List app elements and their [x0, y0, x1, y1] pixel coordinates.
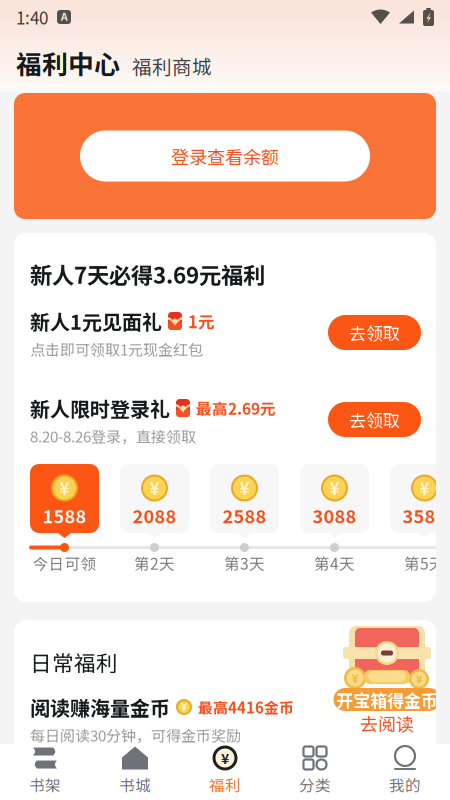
staticText: A	[60, 11, 67, 23]
staticText: 最高2.69元	[196, 397, 276, 419]
staticText: 2088	[132, 502, 176, 529]
staticText: 1元	[188, 309, 215, 333]
staticText: ¥	[416, 671, 422, 687]
staticText: 登录查看余额	[171, 143, 279, 169]
staticText: 福利商城	[132, 52, 212, 80]
staticText: 去领取	[349, 407, 400, 432]
staticText: 第3天	[224, 552, 265, 574]
button[interactable]: 福利中心	[16, 44, 120, 82]
staticText: 3088	[312, 502, 356, 529]
staticText: 福利中心	[16, 44, 120, 82]
staticText: 我的	[389, 773, 421, 796]
staticText: 每日阅读30分钟，可得金币奖励	[30, 724, 241, 746]
staticText: ¥	[329, 476, 339, 500]
button[interactable]: 分类	[270, 744, 360, 800]
staticText: 最高4416金币	[198, 696, 294, 718]
staticText: 第4天	[314, 552, 355, 574]
staticText: 第5天	[404, 552, 445, 574]
staticText: 阅读赚海量金币	[30, 692, 170, 721]
staticText: 新人7天必得3.69元福利	[30, 258, 265, 290]
staticText: 3588	[402, 502, 446, 529]
staticText: 新人1元见面礼	[30, 306, 162, 335]
staticText: ¥	[221, 748, 229, 768]
staticText: ¥	[59, 476, 69, 500]
staticText: 新人限时登录礼	[30, 393, 170, 422]
staticText: 1:40	[16, 5, 48, 29]
staticText: ¥	[239, 476, 249, 500]
button[interactable]: 开宝箱得金币	[333, 688, 440, 711]
button[interactable]: 书城	[90, 744, 180, 800]
staticText: 今日可领	[32, 552, 96, 574]
button[interactable]: 登录查看余额	[80, 130, 370, 181]
staticText: 分类	[299, 773, 331, 796]
button[interactable]: 书架	[0, 744, 90, 800]
staticText: ¥	[351, 669, 358, 687]
button[interactable]: ¥	[180, 744, 270, 800]
button[interactable]: 福利商城	[132, 52, 212, 80]
staticText: 开宝箱得金币	[336, 687, 438, 712]
staticText: ¥	[419, 476, 429, 500]
button[interactable]: 去领取	[328, 402, 421, 437]
staticText: ¥	[181, 700, 187, 714]
staticText: 2588	[222, 502, 266, 529]
staticText: 日常福利	[30, 646, 118, 677]
staticText: 点击即可领取1元现金红包	[30, 338, 203, 360]
staticText: 书城	[119, 773, 151, 796]
staticText: 书架	[29, 773, 61, 796]
staticText: 去领取	[349, 320, 400, 345]
staticText: ¥	[149, 476, 159, 500]
staticText: 8.20-8.26登录，直接领取	[30, 425, 196, 447]
staticText: 第2天	[134, 552, 175, 574]
staticText: 去阅读	[360, 710, 414, 736]
button[interactable]: 我的	[360, 744, 450, 800]
staticText: 福利	[209, 773, 241, 796]
button[interactable]: 去领取	[328, 315, 421, 350]
staticText: 1588	[42, 502, 86, 529]
